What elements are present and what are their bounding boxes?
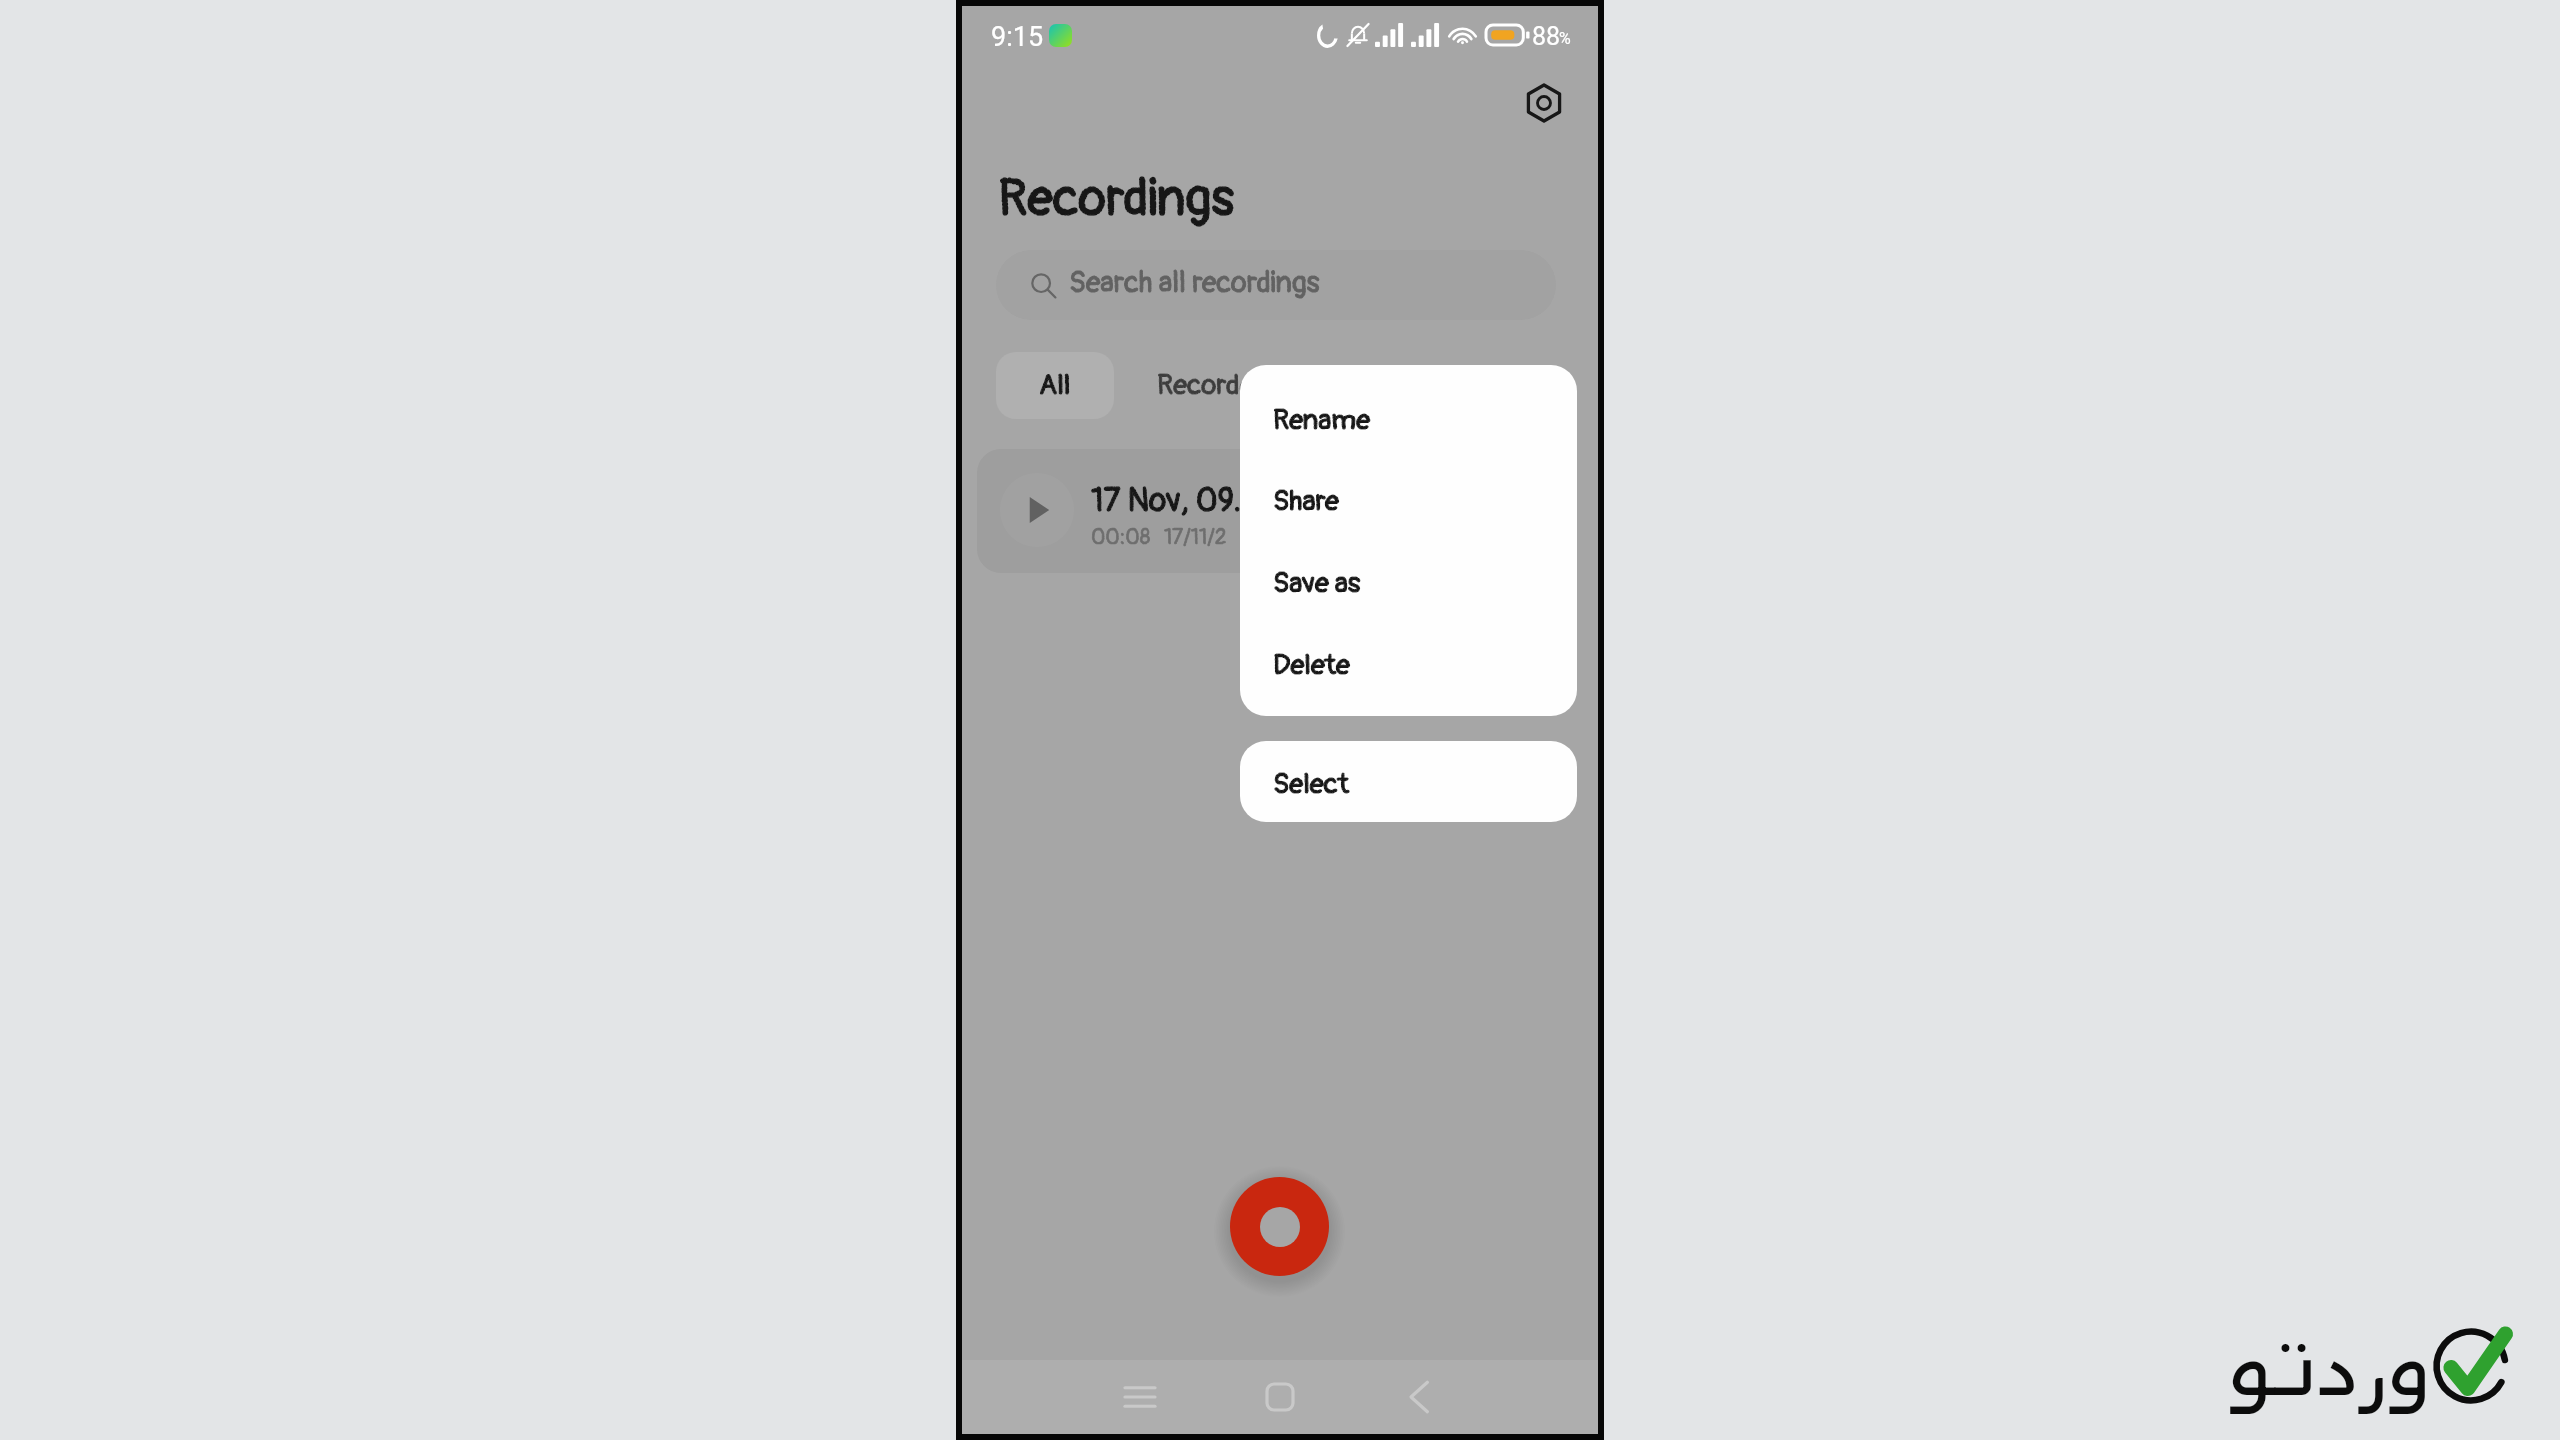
staticText: Search all recordings xyxy=(1069,265,1320,301)
button[interactable]: All xyxy=(996,352,1114,419)
staticText: 9:15 xyxy=(991,21,1044,53)
staticText: 00:08 17/11/2 xyxy=(1091,524,1227,550)
button[interactable]: Recorder xyxy=(1136,352,1284,419)
staticText: Save as xyxy=(1273,566,1361,601)
staticText: % xyxy=(1559,29,1571,48)
button[interactable] xyxy=(996,250,1556,320)
staticText: Share xyxy=(1273,484,1339,519)
button[interactable]: Back xyxy=(1388,1366,1450,1428)
button[interactable]: Select xyxy=(1240,741,1577,822)
button[interactable]: Settings xyxy=(1520,79,1568,127)
button[interactable]: Rename xyxy=(1240,365,1577,447)
staticText: 88 xyxy=(1532,22,1561,51)
staticText: Delete xyxy=(1273,648,1350,683)
button[interactable]: Share xyxy=(1240,446,1577,528)
staticText: Search all recordings xyxy=(1069,265,1320,301)
button[interactable]: Save as xyxy=(1240,528,1577,610)
staticText: Delete xyxy=(1273,648,1350,683)
button[interactable]: Home xyxy=(1249,1366,1311,1428)
staticText: Save as xyxy=(1273,566,1361,601)
staticText: Recordings xyxy=(998,167,1235,231)
staticText: Select xyxy=(1273,767,1350,802)
staticText: 17 Nov, 09. xyxy=(1091,481,1242,521)
staticText: Share xyxy=(1273,484,1339,519)
staticText: Recorder xyxy=(1157,368,1264,403)
button[interactable] xyxy=(977,449,1573,573)
staticText: Recordings xyxy=(998,167,1235,231)
staticText: 00:08 17/11/2 xyxy=(1091,524,1227,550)
button[interactable]: Delete xyxy=(1240,610,1577,692)
staticText: وردتو xyxy=(2228,1304,2430,1414)
staticText: Select xyxy=(1273,767,1350,802)
staticText: Rename xyxy=(1273,403,1370,438)
staticText: Rename xyxy=(1273,403,1370,438)
button[interactable]: Record xyxy=(1230,1177,1329,1276)
button[interactable]: Recent apps xyxy=(1109,1366,1171,1428)
staticText: 17 Nov, 09. xyxy=(1091,481,1242,521)
staticText: All xyxy=(1039,368,1071,403)
staticText: Recorder xyxy=(1157,368,1264,403)
staticText: All xyxy=(1039,368,1071,403)
